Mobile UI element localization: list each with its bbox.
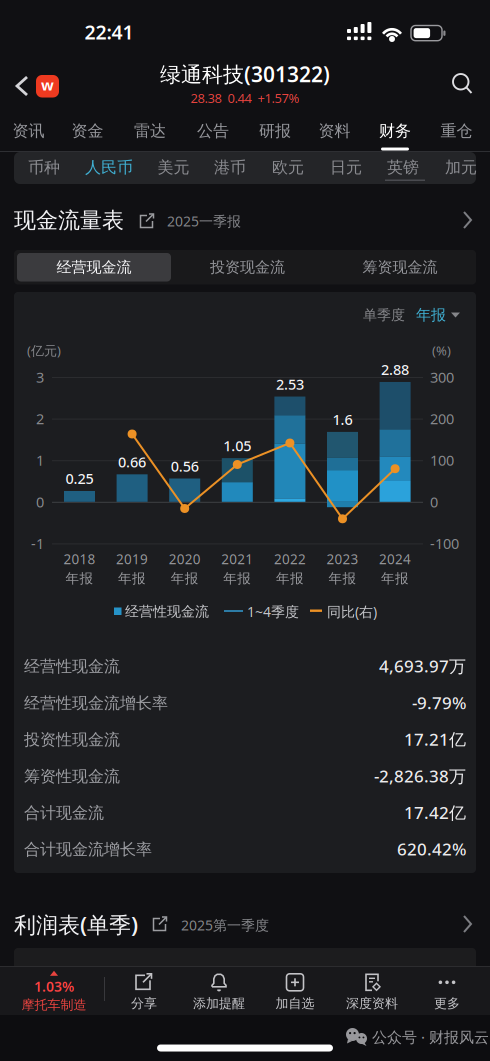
staticText: 2025第一季度 — [181, 915, 269, 935]
staticText: 公众号 · 财报风云 — [372, 1027, 489, 1047]
staticText: 资料 — [318, 121, 350, 141]
staticText: 1.05 — [223, 436, 251, 455]
staticText: 加元 — [445, 157, 477, 178]
staticText: 100 — [430, 450, 454, 470]
staticText: 同比(右) — [327, 602, 377, 621]
staticText: 资讯 — [12, 121, 44, 141]
staticText: 添加提醒 — [193, 995, 245, 1012]
staticText: 欧元 — [272, 157, 304, 178]
staticText: 2023 — [326, 550, 358, 568]
staticText: 年报 — [381, 570, 409, 587]
staticText: 2.53 — [276, 374, 304, 394]
staticText: 200 — [430, 409, 454, 428]
staticText: 财务 — [379, 121, 411, 141]
button[interactable]: 经营现金流 — [0, 0, 154, 28]
staticText: (亿元) — [27, 342, 61, 359]
staticText: 经营性现金流 — [24, 656, 120, 677]
staticText: 2021 — [221, 550, 253, 568]
staticText: 年报 — [65, 570, 93, 587]
staticText: 0.56 — [171, 456, 199, 476]
staticText: 现金流量表 — [14, 207, 124, 234]
staticText: 2020 — [169, 550, 201, 568]
staticText: 17.42亿 — [404, 801, 466, 824]
staticText: 年报 — [118, 570, 146, 587]
staticText: 年报 — [171, 570, 199, 587]
staticText: 单季度 — [363, 306, 405, 324]
button[interactable]: 筹资现金流 — [0, 0, 152, 28]
staticText: 1.6 — [332, 409, 352, 429]
staticText: 17.21亿 — [404, 728, 466, 751]
staticText: -1 — [31, 533, 44, 553]
staticText: 3 — [36, 367, 44, 387]
staticText: 2018 — [63, 550, 95, 568]
staticText: 0 — [430, 492, 438, 512]
staticText: 人民币 — [85, 157, 133, 178]
staticText: 摩托车制造 — [21, 997, 86, 1013]
staticText: 年报 — [416, 306, 446, 324]
staticText: -9.79% — [412, 691, 466, 714]
staticText: 美元 — [157, 157, 189, 178]
staticText: 筹资性现金流 — [24, 766, 120, 786]
staticText: (%) — [432, 342, 451, 359]
staticText: 620.42% — [397, 837, 466, 861]
staticText: 4,693.97万 — [379, 654, 466, 678]
staticText: 合计现金流增长率 — [24, 839, 152, 860]
staticText: 重仓 — [440, 121, 472, 141]
staticText: 研报 — [259, 121, 291, 141]
staticText: 0.66 — [118, 452, 146, 472]
staticText: 年报 — [328, 570, 356, 587]
button[interactable]: 投资现金流 — [0, 0, 153, 28]
staticText: 1 — [36, 450, 44, 470]
staticText: 0.25 — [65, 469, 93, 488]
staticText: -2,826.38万 — [374, 764, 466, 787]
staticText: 港币 — [214, 157, 246, 178]
staticText: 经营性现金流 — [125, 603, 209, 620]
staticText: 英镑 — [387, 157, 419, 178]
staticText: 年报 — [223, 570, 251, 587]
staticText: 雷达 — [134, 121, 166, 141]
staticText: 日元 — [330, 157, 362, 178]
staticText: 币种 — [28, 157, 60, 178]
staticText: 1~4季度 — [247, 602, 299, 621]
staticText: -100 — [430, 533, 459, 553]
staticText: 2025一季报 — [167, 211, 241, 231]
staticText: 利润表(单季) — [14, 909, 138, 939]
staticText: 300 — [430, 367, 454, 387]
staticText: 公告 — [197, 121, 229, 141]
button[interactable]: 1.03% — [0, 0, 92, 46]
staticText: 投资现金流 — [210, 258, 285, 277]
staticText: 更多 — [434, 995, 460, 1012]
staticText: 经营现金流 — [56, 258, 131, 277]
staticText: 1.03% — [34, 977, 74, 996]
staticText: 2.88 — [381, 360, 409, 379]
staticText: 年报 — [276, 570, 304, 587]
